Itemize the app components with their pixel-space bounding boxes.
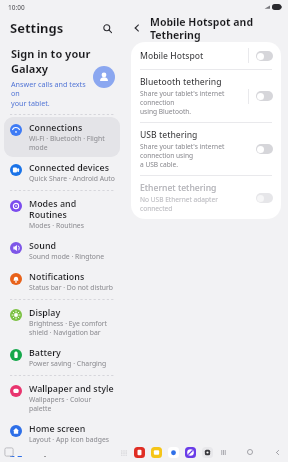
button[interactable]: USB tethering toggle	[256, 144, 273, 154]
button[interactable]: Bluetooth tethering	[131, 70, 281, 122]
staticText: Settings	[10, 19, 64, 37]
staticText: Wi-Fi · Bluetooth · Flight	[29, 134, 105, 143]
staticText: 10:00	[8, 3, 25, 12]
button[interactable]: USB tethering	[131, 123, 281, 175]
staticText: Modes · Routines	[29, 221, 84, 230]
staticText: Share your tablet's internet connection	[140, 89, 248, 107]
button[interactable]: App	[168, 447, 179, 458]
staticText: USB tethering	[140, 129, 198, 141]
button[interactable]: Sign in to your	[0, 42, 124, 112]
button[interactable]: Lock screen	[4, 449, 120, 462]
staticText: Display	[29, 307, 61, 319]
button[interactable]: Battery	[4, 342, 120, 373]
button[interactable]: Mobile Hotspot toggle	[256, 51, 273, 61]
button[interactable]: Home screen	[4, 418, 120, 449]
button[interactable]: Modes and Routines	[4, 193, 120, 235]
staticText: Lock screen	[29, 454, 80, 457]
staticText: a USB cable.	[140, 160, 178, 169]
button[interactable]: App	[185, 447, 196, 458]
staticText: Battery	[29, 347, 61, 359]
button[interactable]: Mobile Hotspot	[131, 42, 281, 69]
staticText: Wallpaper and style	[29, 383, 114, 395]
staticText: Mobile Hotspot	[140, 50, 204, 62]
staticText: Home screen	[29, 423, 86, 435]
button[interactable]: Sound	[4, 235, 120, 266]
button[interactable]: Notifications	[4, 266, 120, 297]
staticText: Bluetooth tethering	[140, 76, 222, 88]
staticText: using Bluetooth.	[140, 107, 192, 116]
button[interactable]: Ethernet tethering	[131, 176, 281, 219]
staticText: mode	[29, 143, 48, 152]
staticText: Share your tablet's internet connection …	[140, 142, 249, 160]
staticText: Brightness · Eye comfort	[29, 319, 108, 328]
staticText: Quick Share · Android Auto	[29, 174, 115, 183]
button[interactable]: Ethernet tethering toggle	[256, 193, 273, 203]
button[interactable]: Home	[245, 447, 255, 457]
staticText: Modes and Routines	[29, 198, 115, 221]
button[interactable]: Back	[128, 19, 146, 37]
staticText: Status bar · Do not disturb	[29, 283, 114, 292]
button[interactable]: App	[202, 447, 213, 458]
button[interactable]: Wallpaper and style	[4, 378, 120, 418]
button[interactable]: App	[134, 447, 145, 458]
staticText: Power saving · Charging	[29, 359, 107, 368]
staticText: Sign in to your	[11, 46, 91, 61]
staticText: Connected devices	[29, 162, 110, 174]
button[interactable]: Connections	[4, 117, 120, 157]
button[interactable]: Recents	[218, 447, 228, 457]
button[interactable]: Apps	[4, 447, 14, 457]
button[interactable]: App	[151, 447, 162, 458]
staticText: Ethernet tethering	[140, 182, 217, 194]
staticText: Answer calls and texts on	[11, 79, 93, 98]
staticText: Galaxy	[11, 61, 49, 76]
staticText: Mobile Hotspot and Tethering	[150, 15, 288, 42]
button[interactable]: Connected devices	[4, 157, 120, 188]
button[interactable]: Display	[4, 302, 120, 342]
staticText: Sound	[29, 240, 56, 252]
staticText: Layout · App icon badges	[29, 435, 109, 444]
button[interactable]: App drawer	[119, 448, 128, 457]
staticText: Sound mode · Ringtone	[29, 252, 104, 261]
staticText: shield · Navigation bar	[29, 328, 101, 337]
staticText: your tablet.	[11, 98, 50, 108]
button[interactable]: Search	[98, 19, 116, 37]
staticText: Connections	[29, 122, 83, 134]
staticText: Wallpapers · Colour palette	[29, 395, 115, 413]
button[interactable]: Back	[272, 447, 282, 457]
button[interactable]: Bluetooth tethering toggle	[256, 91, 273, 101]
staticText: No USB Ethernet adapter connected	[140, 195, 249, 213]
staticText: Notifications	[29, 271, 85, 283]
